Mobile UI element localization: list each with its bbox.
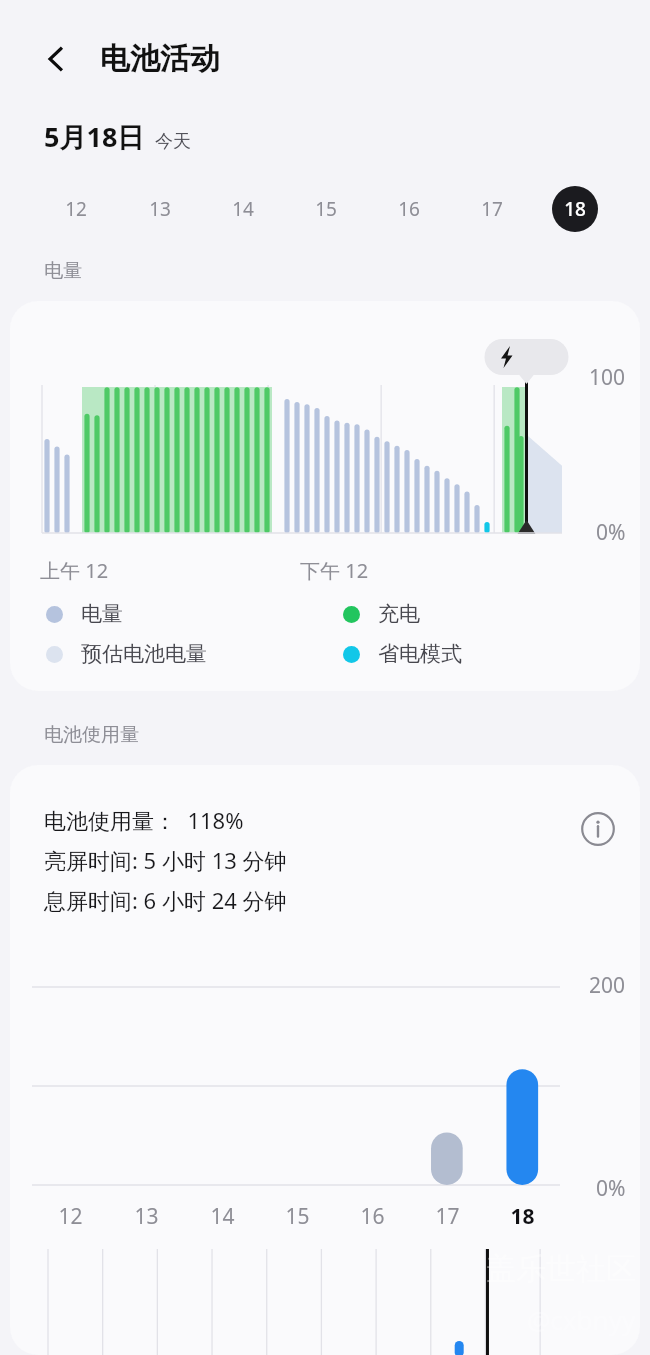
- button[interactable]: 12: [34, 181, 118, 237]
- button[interactable]: Information: [574, 805, 622, 853]
- button[interactable]: 100: [10, 301, 640, 691]
- staticText: 15: [315, 196, 337, 222]
- staticText: 200: [589, 971, 626, 1000]
- staticText: 电池活动: [100, 40, 220, 78]
- staticText: 电量: [44, 259, 82, 283]
- staticText: 电池使用量: [44, 723, 139, 747]
- staticText: 0%: [596, 1174, 626, 1203]
- button[interactable]: 14: [201, 181, 284, 237]
- button[interactable]: 17: [450, 181, 533, 237]
- staticText: 今天: [155, 130, 191, 153]
- staticText: 下午 12: [300, 557, 369, 584]
- staticText: 18: [510, 1202, 535, 1231]
- staticText: 预估电池电量: [81, 641, 207, 667]
- staticText: 14: [232, 196, 254, 222]
- staticText: 上午 12: [40, 557, 109, 584]
- staticText: 0%: [596, 518, 626, 547]
- staticText: 17: [435, 1202, 460, 1231]
- staticText: 电池使用量： 118%: [44, 805, 244, 835]
- button[interactable]: 18: [533, 181, 616, 237]
- staticText: 息屏时间: 6 小时 24 分钟: [44, 885, 287, 915]
- button[interactable]: 15: [284, 181, 367, 237]
- staticText: 13: [134, 1202, 159, 1231]
- staticText: 16: [398, 196, 420, 222]
- staticText: 14: [210, 1202, 235, 1231]
- button[interactable]: Back: [30, 33, 82, 85]
- staticText: 12: [65, 196, 87, 222]
- staticText: 15: [285, 1202, 310, 1231]
- staticText: 18: [564, 196, 586, 222]
- staticText: 17: [481, 196, 503, 222]
- button[interactable]: 13: [118, 181, 201, 237]
- button[interactable]: 16: [367, 181, 450, 237]
- staticText: 13: [149, 196, 171, 222]
- staticText: 5月18日: [44, 118, 145, 155]
- staticText: 盖乐世社区: [486, 1250, 636, 1288]
- staticText: 16: [360, 1202, 385, 1231]
- staticText: 亮屏时间: 5 小时 13 分钟: [44, 845, 287, 875]
- staticText: 12: [58, 1202, 83, 1231]
- staticText: 充电: [378, 601, 420, 627]
- staticText: 电量: [81, 601, 123, 627]
- staticText: 100: [589, 363, 626, 392]
- staticText: 省电模式: [378, 641, 462, 667]
